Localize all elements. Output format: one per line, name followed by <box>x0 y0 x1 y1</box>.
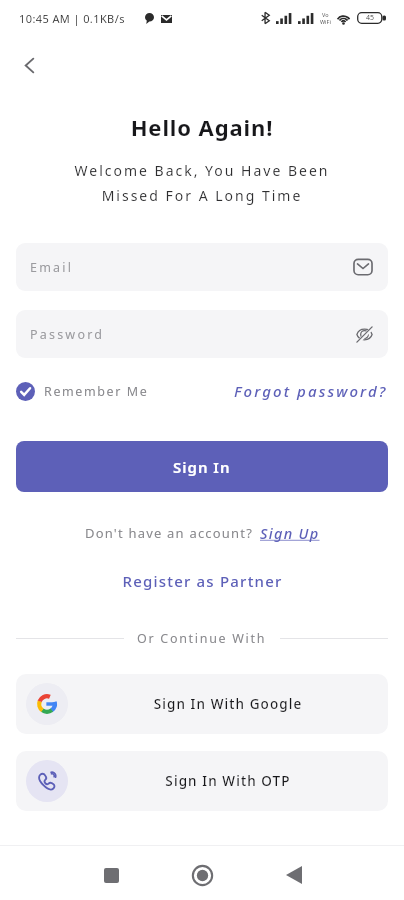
button[interactable]: Home <box>183 856 221 894</box>
staticText: Email <box>30 259 74 276</box>
button[interactable]: Recents <box>92 856 130 894</box>
button[interactable]: Sign In With Google <box>16 674 388 734</box>
staticText: 45 <box>366 13 375 23</box>
button[interactable]: Back <box>8 44 50 86</box>
staticText: Vo <box>322 11 329 18</box>
staticText: Sign In <box>173 457 231 477</box>
button[interactable]: Sign Up <box>260 523 320 543</box>
button[interactable]: Back <box>275 856 313 894</box>
button[interactable]: Register as Partner <box>116 569 289 593</box>
staticText: Hello Again! <box>0 112 404 142</box>
staticText: WiFi <box>320 18 331 25</box>
staticText: Sign In With OTP <box>68 772 388 790</box>
button[interactable]: Email <box>16 243 388 291</box>
staticText: Password <box>30 326 105 343</box>
button[interactable]: Forgot password? <box>234 381 388 401</box>
staticText: Remember Me <box>44 383 149 400</box>
button[interactable]: Remember Me <box>16 382 149 401</box>
staticText: 10:45 AM | 0.1KB/s <box>19 11 125 26</box>
button[interactable]: Password <box>16 310 388 358</box>
staticText: Sign In With Google <box>68 695 388 713</box>
staticText: Or Continue With <box>137 630 267 647</box>
staticText: Welcome Back, You Have Been Missed For A… <box>0 161 404 205</box>
staticText: Don't have an account? <box>85 524 254 542</box>
button[interactable]: Sign In With OTP <box>16 751 388 811</box>
staticText: Register as Partner <box>122 571 283 591</box>
button[interactable]: Sign In <box>16 441 388 492</box>
